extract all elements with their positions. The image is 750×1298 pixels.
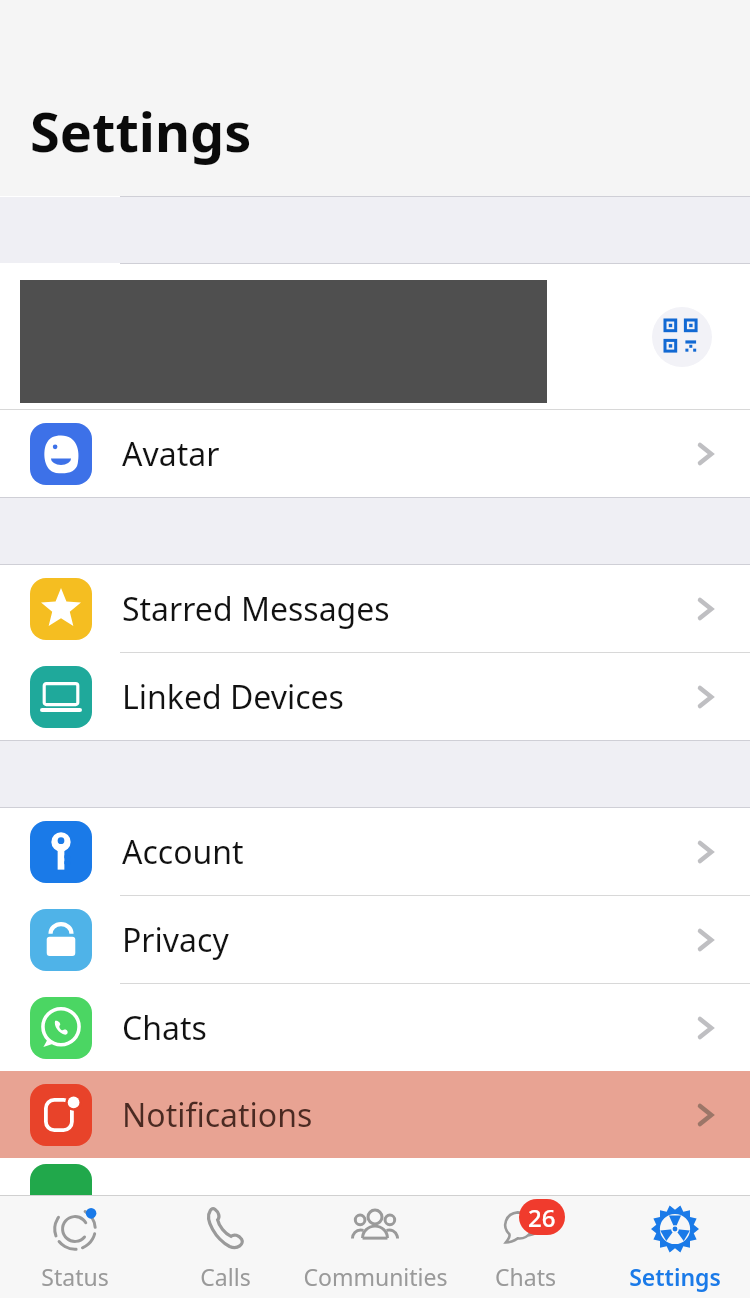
staticText: Avatar — [122, 432, 220, 476]
button[interactable]: Settings — [600, 1196, 750, 1298]
button[interactable]: QR code — [652, 307, 712, 367]
button[interactable]: 26 — [450, 1196, 600, 1298]
button[interactable]: Communities — [300, 1196, 450, 1298]
staticText: Account — [122, 830, 244, 874]
staticText: Settings — [629, 1261, 721, 1292]
staticText: Settings — [30, 94, 252, 168]
button[interactable]: Linked Devices — [0, 653, 750, 740]
staticText: Notifications — [122, 1093, 313, 1137]
button[interactable]: Notifications — [0, 1071, 750, 1158]
staticText: Chats — [495, 1261, 556, 1292]
button[interactable]: Starred Messages — [0, 565, 750, 652]
button[interactable]: QR code — [0, 264, 750, 409]
button[interactable]: Privacy — [0, 896, 750, 983]
button[interactable]: Calls — [150, 1196, 300, 1298]
staticText: Communities — [303, 1261, 448, 1292]
staticText: Calls — [200, 1261, 251, 1292]
staticText: Linked Devices — [122, 675, 344, 719]
staticText: Starred Messages — [122, 587, 390, 631]
button[interactable]: Status — [0, 1196, 150, 1298]
button[interactable]: Chats — [0, 984, 750, 1071]
button[interactable]: Account — [0, 808, 750, 895]
staticText: Privacy — [122, 918, 229, 962]
button[interactable]: Avatar — [0, 410, 750, 497]
staticText: Status — [41, 1261, 109, 1292]
staticText: Chats — [122, 1006, 207, 1050]
staticText: 26 — [528, 1201, 556, 1234]
